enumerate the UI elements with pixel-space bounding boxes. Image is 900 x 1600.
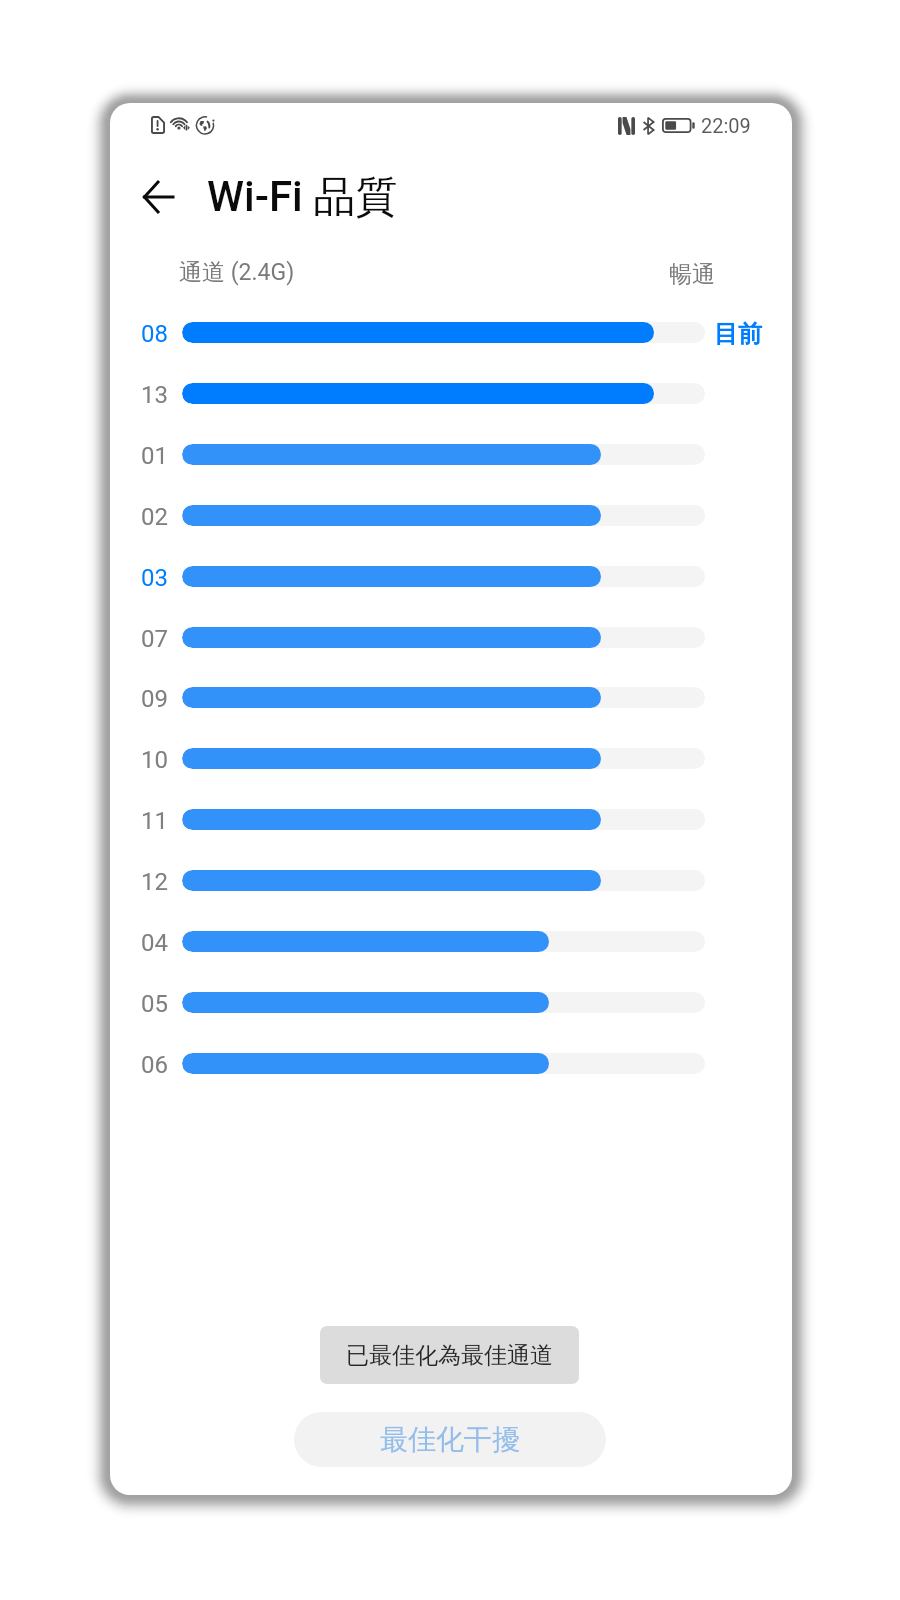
staticText: 13 <box>141 381 168 409</box>
button[interactable]: 10 <box>110 728 792 789</box>
staticText: 04 <box>141 929 168 957</box>
button[interactable]: 11 <box>110 789 792 850</box>
staticText: 10 <box>141 746 168 774</box>
staticText: Wi-Fi 品質 <box>207 171 398 224</box>
staticText: 07 <box>141 625 168 653</box>
staticText: 09 <box>141 685 168 713</box>
staticText: 22:09 <box>701 114 751 137</box>
button[interactable]: 09 <box>110 667 792 728</box>
button[interactable]: 01 <box>110 424 792 485</box>
staticText: 01 <box>141 442 168 470</box>
button[interactable]: 06 <box>110 1033 792 1094</box>
button[interactable]: 05 <box>110 972 792 1033</box>
staticText: 06 <box>141 1051 168 1079</box>
button[interactable]: 13 <box>110 363 792 424</box>
button[interactable]: 03 <box>110 546 792 607</box>
staticText: 通道 (2.4G) <box>179 258 295 287</box>
staticText: 最佳化干擾 <box>380 1422 520 1457</box>
button[interactable]: 已最佳化為最佳通道 <box>320 1326 579 1384</box>
button[interactable]: 02 <box>110 485 792 546</box>
staticText: 11 <box>141 807 168 835</box>
staticText: 已最佳化為最佳通道 <box>346 1341 553 1370</box>
staticText: 12 <box>141 868 168 896</box>
staticText: 暢通 <box>669 260 715 289</box>
staticText: 05 <box>141 990 168 1018</box>
button[interactable]: Back <box>130 169 186 225</box>
button[interactable]: 07 <box>110 607 792 668</box>
button[interactable]: 04 <box>110 911 792 972</box>
button[interactable]: 12 <box>110 850 792 911</box>
button[interactable]: 最佳化干擾 <box>294 1412 606 1467</box>
staticText: 03 <box>141 564 168 592</box>
staticText: 目前 <box>714 319 762 349</box>
staticText: 08 <box>141 320 168 348</box>
button[interactable]: 08 <box>110 302 792 363</box>
staticText: 02 <box>141 503 168 531</box>
